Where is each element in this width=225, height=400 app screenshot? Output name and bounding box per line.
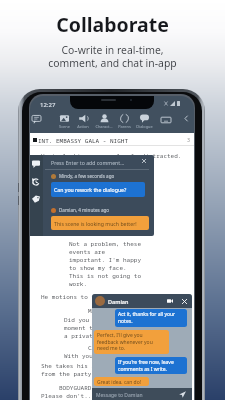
staticText: MARK bbox=[88, 307, 103, 315]
button[interactable]: Send bbox=[178, 390, 187, 399]
staticText: Damian bbox=[108, 298, 129, 305]
staticText: Not a problem, these bbox=[69, 240, 142, 248]
staticText: She takes his arm and bbox=[41, 362, 117, 370]
staticText: work. bbox=[69, 280, 88, 288]
button[interactable]: Video call bbox=[165, 296, 175, 306]
staticText: This scene is looking much better! bbox=[54, 220, 137, 227]
staticText: He is looking away, clearly distracted. bbox=[41, 152, 182, 160]
staticText: Please don't... bbox=[41, 392, 96, 400]
staticText: Mindy, a few seconds ago bbox=[59, 173, 115, 179]
button[interactable]: Scene bbox=[53, 113, 75, 129]
staticText: Act it, thanks for all your notes. bbox=[118, 311, 176, 324]
button[interactable]: Keyboard bbox=[159, 113, 172, 126]
button[interactable]: Close comments bbox=[139, 156, 149, 166]
button[interactable]: Comments bbox=[30, 113, 43, 126]
staticText: With you. bbox=[64, 352, 97, 360]
staticText: If you're free now, leave comments as I … bbox=[118, 359, 174, 372]
staticText: Message to Damian bbox=[96, 392, 143, 399]
button[interactable]: Action bbox=[72, 113, 94, 129]
button[interactable]: Charact... bbox=[93, 113, 115, 129]
staticText: Co-write in real-time, comment, and chat… bbox=[48, 43, 177, 70]
staticText: Action bbox=[77, 124, 89, 129]
staticText: This is not going to bbox=[69, 272, 142, 280]
staticText: CARA bbox=[88, 344, 103, 352]
button[interactable]: Comments bbox=[30, 156, 43, 171]
staticText: 12:27 bbox=[40, 101, 56, 109]
staticText: Press Enter to add comment... bbox=[51, 159, 125, 166]
staticText: Did you have a bbox=[64, 316, 115, 324]
staticText: Great idea, can do! bbox=[97, 379, 142, 384]
button[interactable]: Parens bbox=[113, 113, 135, 129]
staticText: Scene bbox=[59, 124, 70, 129]
button[interactable]: Tags bbox=[30, 191, 43, 206]
button[interactable]: Close chat bbox=[179, 296, 189, 306]
staticText: Collaborate bbox=[56, 11, 169, 38]
staticText: Can you rework the dialogue? bbox=[54, 186, 127, 193]
staticText: to show my face. bbox=[69, 264, 127, 272]
button[interactable]: Version history bbox=[30, 174, 43, 189]
button[interactable]: Back bbox=[181, 113, 192, 124]
staticText: moment to review bbox=[64, 324, 122, 332]
staticText: Damian, 4 minutes ago bbox=[59, 207, 110, 213]
staticText: Parens bbox=[118, 124, 131, 129]
staticText: important. I'm happy bbox=[69, 256, 142, 264]
staticText: BODYGUARD bbox=[59, 384, 92, 392]
staticText: a private... bbox=[64, 332, 108, 340]
staticText: from the party. bbox=[41, 370, 96, 378]
staticText: Dialogue bbox=[136, 124, 153, 129]
staticText: Perfect, I'll give you feedback whenever… bbox=[97, 332, 153, 351]
button[interactable]: Dialogue bbox=[133, 113, 155, 129]
staticText: 3 bbox=[187, 137, 191, 144]
staticText: He motions to the door. bbox=[41, 293, 124, 301]
staticText: Charact... bbox=[95, 124, 113, 129]
staticText: INT. EMBASSY GALA - NIGHT bbox=[38, 137, 129, 145]
staticText: events are bbox=[69, 248, 106, 256]
